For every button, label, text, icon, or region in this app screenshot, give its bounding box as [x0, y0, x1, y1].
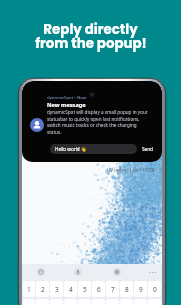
button[interactable]: More options: [148, 268, 157, 277]
staticText: 6: [97, 285, 101, 294]
button[interactable]: Hello world 👋: [50, 144, 137, 154]
staticText: 0: [153, 285, 157, 294]
button[interactable]: Voice input: [73, 267, 83, 277]
staticText: Reply directly: [43, 20, 138, 39]
staticText: 9: [139, 285, 143, 294]
staticText: New message: [47, 101, 86, 109]
staticText: 2: [41, 285, 45, 294]
button[interactable]: 2: [36, 281, 49, 297]
staticText: 4: [69, 285, 73, 294]
staticText: dynamicSpot will display a small popup i…: [47, 109, 148, 115]
button[interactable]: Sender avatar: [30, 118, 44, 132]
button[interactable]: 0: [148, 281, 161, 297]
button[interactable]: 5: [78, 281, 91, 297]
staticText: 1: [27, 285, 31, 294]
button[interactable]: 1: [23, 281, 35, 297]
button[interactable]: 6: [92, 281, 105, 297]
button[interactable]: Settings: [112, 267, 122, 277]
button[interactable]: 8: [120, 281, 133, 297]
button[interactable]: Emoji: [36, 267, 46, 277]
staticText: UV index : Low • 19:38: [107, 167, 155, 173]
staticText: from the popup!: [35, 34, 147, 53]
staticText: 8: [125, 285, 129, 294]
staticText: statusbar to quickly open last notificat…: [47, 116, 140, 122]
staticText: Hello world 👋: [55, 146, 87, 152]
button[interactable]: 9: [134, 281, 147, 297]
staticText: 3: [55, 285, 59, 294]
staticText: status.: [47, 129, 62, 135]
staticText: dynamicSpot • Now: [47, 94, 87, 100]
button[interactable]: Send: [142, 146, 153, 152]
staticText: 5: [83, 285, 87, 294]
staticText: 7: [111, 285, 115, 294]
staticText: switch music tracks or check the chargin…: [47, 122, 137, 128]
button[interactable]: 3: [50, 281, 63, 297]
button[interactable]: 7: [106, 281, 119, 297]
button[interactable]: 4: [64, 281, 77, 297]
staticText: Send: [142, 146, 153, 152]
